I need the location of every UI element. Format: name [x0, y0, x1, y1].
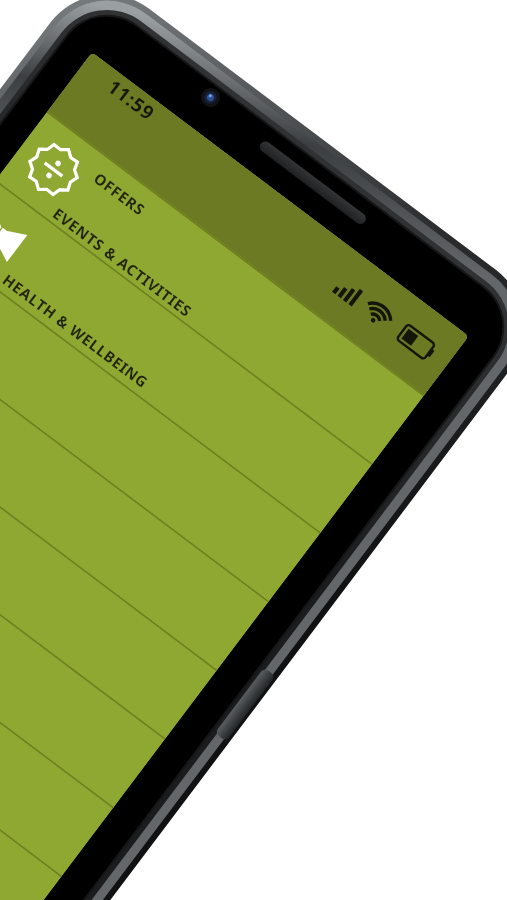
staticText: OFFERS: [90, 168, 150, 220]
staticText: EVENTS & ACTIVITIES: [49, 203, 196, 321]
staticText: 11:59: [102, 74, 160, 126]
button[interactable]: OFFERS: [88, 166, 152, 222]
button[interactable]: HEALTH & WELLBEING: [0, 267, 155, 394]
button[interactable]: EVENTS & ACTIVITIES: [47, 201, 198, 323]
staticText: HEALTH & WELLBEING: [0, 269, 153, 393]
